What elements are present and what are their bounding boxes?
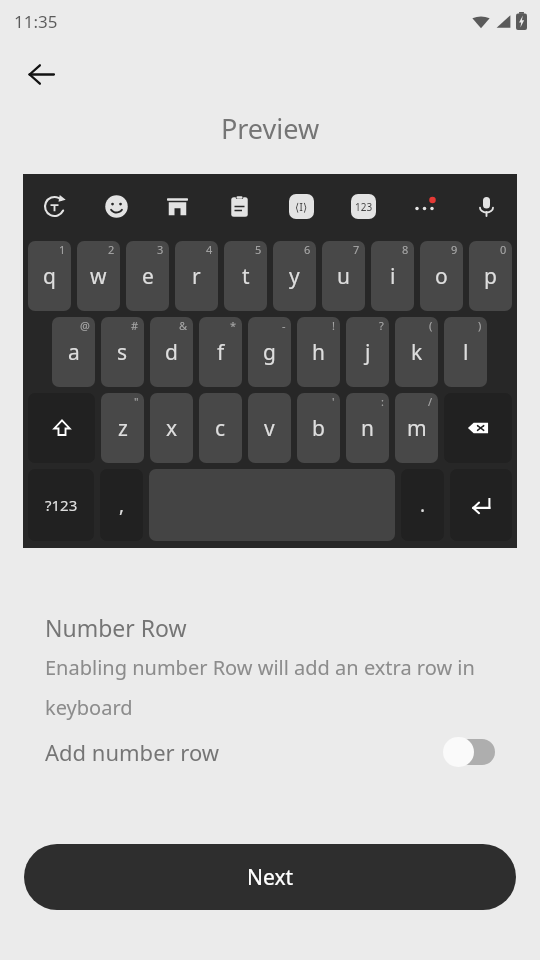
button[interactable] xyxy=(450,469,512,541)
staticText: ) xyxy=(478,318,482,333)
button[interactable]: q xyxy=(28,241,71,311)
button[interactable] xyxy=(444,393,512,463)
button[interactable]: c xyxy=(199,393,242,463)
staticText: r xyxy=(192,262,201,291)
staticText: 6 xyxy=(304,242,311,257)
staticText: t xyxy=(242,262,250,291)
button[interactable]: Add number row xyxy=(45,737,495,767)
staticText: z xyxy=(118,414,128,443)
staticText: i xyxy=(390,262,396,291)
staticText: * xyxy=(230,318,237,333)
staticText: - xyxy=(282,318,286,333)
staticText: u xyxy=(337,262,350,291)
staticText: c xyxy=(215,414,226,443)
button[interactable]: Stickers xyxy=(160,189,194,223)
staticText: Add number row xyxy=(45,737,443,767)
button[interactable]: u xyxy=(322,241,365,311)
button[interactable]: . xyxy=(401,469,444,541)
staticText: d xyxy=(165,338,178,367)
staticText: & xyxy=(179,318,188,333)
staticText: # xyxy=(131,318,139,333)
button[interactable] xyxy=(28,393,95,463)
staticText: ' xyxy=(332,394,335,409)
button[interactable]: w xyxy=(77,241,120,311)
staticText: q xyxy=(43,262,56,291)
staticText: j xyxy=(365,338,371,367)
button[interactable]: j xyxy=(346,317,389,387)
staticText: f xyxy=(217,338,225,367)
staticText: 11:35 xyxy=(14,10,58,33)
button[interactable]: g xyxy=(248,317,291,387)
staticText: w xyxy=(90,262,107,291)
staticText: / xyxy=(428,394,433,409)
staticText: g xyxy=(263,338,276,367)
staticText: ( xyxy=(429,318,433,333)
button[interactable]: More options xyxy=(407,189,441,223)
button[interactable]: z xyxy=(101,393,144,463)
staticText: k xyxy=(411,338,423,367)
button[interactable]: Translate xyxy=(37,189,71,223)
button[interactable]: a xyxy=(52,317,95,387)
button[interactable]: Next xyxy=(24,844,516,910)
button[interactable]: x xyxy=(150,393,193,463)
button[interactable]: n xyxy=(346,393,389,463)
button[interactable]: Back xyxy=(17,50,65,98)
button[interactable]: p xyxy=(469,241,512,311)
button[interactable]: k xyxy=(395,317,438,387)
staticText: 7 xyxy=(353,242,360,257)
staticText: p xyxy=(484,262,497,291)
staticText: n xyxy=(361,414,374,443)
button[interactable]: Voice input xyxy=(469,189,503,223)
staticText: Enabling number Row will add an extra ro… xyxy=(45,654,495,720)
button[interactable]: e xyxy=(126,241,169,311)
staticText: ?123 xyxy=(45,495,78,515)
button[interactable]: , xyxy=(100,469,143,541)
button[interactable]: Emoji xyxy=(99,189,133,223)
staticText: y xyxy=(289,262,300,291)
staticText: 9 xyxy=(451,242,458,257)
staticText: Preview xyxy=(0,110,540,147)
button[interactable]: d xyxy=(150,317,193,387)
button[interactable]: Clipboard xyxy=(222,189,256,223)
button[interactable]: o xyxy=(420,241,463,311)
staticText: 5 xyxy=(255,242,262,257)
staticText: @ xyxy=(80,318,90,333)
staticText: a xyxy=(68,338,80,367)
button[interactable]: s xyxy=(101,317,144,387)
staticText: s xyxy=(117,338,128,367)
button[interactable]: v xyxy=(248,393,291,463)
button[interactable]: f xyxy=(199,317,242,387)
button[interactable]: h xyxy=(297,317,340,387)
staticText: v xyxy=(264,414,275,443)
staticText: 1 xyxy=(59,242,66,257)
button[interactable]: Text editing xyxy=(284,189,318,223)
staticText: l xyxy=(463,338,469,367)
staticText: , xyxy=(119,492,125,518)
staticText: ? xyxy=(379,318,384,333)
button[interactable]: y xyxy=(273,241,316,311)
staticText: " xyxy=(134,394,139,409)
button[interactable]: b xyxy=(297,393,340,463)
staticText: ! xyxy=(332,318,335,333)
button[interactable]: Numbers xyxy=(346,189,380,223)
staticText: 0 xyxy=(500,242,507,257)
button[interactable]: r xyxy=(175,241,218,311)
staticText: m xyxy=(407,414,427,443)
button[interactable]: l xyxy=(444,317,487,387)
button[interactable]: m xyxy=(395,393,438,463)
button[interactable]: i xyxy=(371,241,414,311)
staticText: 123 xyxy=(355,200,373,214)
staticText: h xyxy=(312,338,325,367)
staticText: ⟨I⟩ xyxy=(295,199,308,214)
staticText: 8 xyxy=(402,242,409,257)
staticText: o xyxy=(435,262,448,291)
staticText: Number Row xyxy=(45,612,187,643)
staticText: Next xyxy=(247,863,294,892)
button[interactable]: ?123 xyxy=(28,469,94,541)
button[interactable]: t xyxy=(224,241,267,311)
staticText: b xyxy=(312,414,325,443)
staticText: 3 xyxy=(157,242,164,257)
staticText: 4 xyxy=(206,242,213,257)
staticText: . xyxy=(420,492,426,518)
